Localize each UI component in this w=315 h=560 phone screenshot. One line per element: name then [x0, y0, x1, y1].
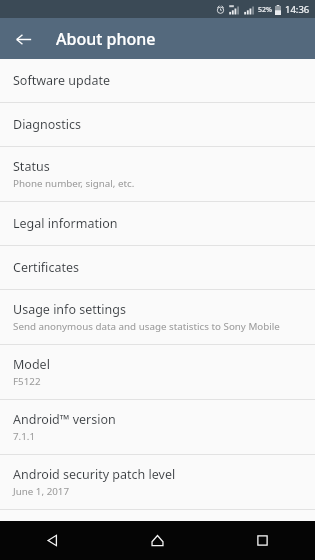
staticText: Certificates	[13, 259, 79, 276]
staticText: 7.1.1	[13, 430, 36, 443]
button[interactable]: Android security patch level	[0, 455, 315, 509]
button[interactable]: Model	[0, 345, 315, 399]
staticText: About phone	[56, 28, 156, 50]
staticText: Software update	[13, 72, 110, 89]
staticText: Android security patch level	[13, 466, 176, 483]
staticText: F5122	[13, 375, 41, 388]
button[interactable]: Usage info settings	[0, 290, 315, 344]
staticText: 14:36	[285, 3, 310, 16]
button[interactable]: Diagnostics	[0, 103, 315, 146]
staticText: Legal information	[13, 215, 118, 232]
staticText: June 1, 2017	[13, 485, 70, 498]
button[interactable]: Software update	[0, 59, 315, 102]
staticText: Send anonymous data and usage statistics…	[13, 320, 280, 333]
staticText: Model	[13, 356, 50, 373]
button[interactable]: Home	[105, 521, 210, 560]
staticText: Android™ version	[13, 411, 116, 428]
button[interactable]: Certificates	[0, 246, 315, 289]
button[interactable]: Back	[0, 521, 105, 560]
staticText: Phone number, signal, etc.	[13, 177, 135, 190]
staticText: Status	[13, 158, 50, 175]
button[interactable]: Legal information	[0, 202, 315, 245]
button[interactable]: Status	[0, 147, 315, 201]
button[interactable]: Back	[5, 21, 41, 57]
staticText: Usage info settings	[13, 301, 126, 318]
button[interactable]: Android™ version	[0, 400, 315, 454]
button[interactable]: Recent apps	[210, 521, 315, 560]
staticText: 52%	[258, 5, 272, 15]
staticText: Diagnostics	[13, 116, 82, 133]
